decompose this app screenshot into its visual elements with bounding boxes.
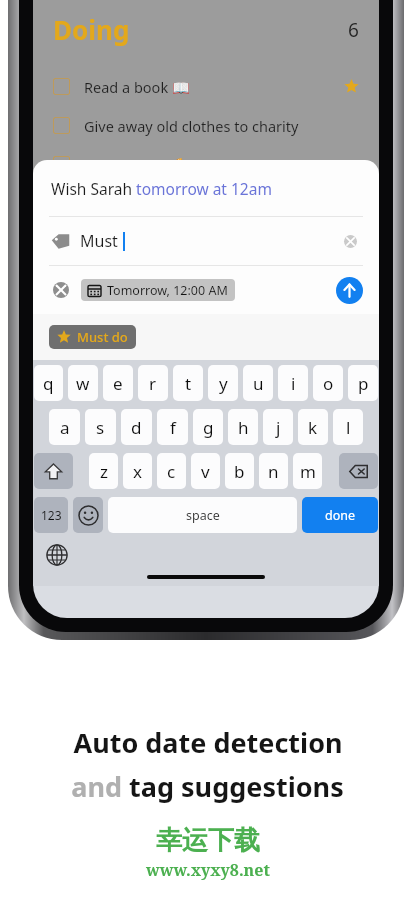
staticText: i [291,372,296,395]
button[interactable]: Shift [34,453,73,489]
staticText: u [253,372,264,395]
staticText: a [60,416,70,439]
button[interactable]: Tomorrow, 12:00 AM [81,279,235,301]
staticText: Give away old clothes to charity [84,116,299,136]
staticText: Bake bread 🥖 [84,155,183,175]
staticText: c [167,460,176,483]
staticText: Must [80,230,118,252]
button[interactable]: Bake bread 🥖 [33,145,379,184]
button[interactable]: y [208,365,238,401]
staticText: Auto date detection [73,724,343,761]
staticText: Tomorrow, 12:00 AM [107,282,228,299]
staticText: j [276,416,281,439]
button[interactable]: d [121,409,152,445]
button[interactable]: l [333,409,363,445]
button[interactable]: z [89,453,118,489]
staticText: z [100,460,108,483]
button[interactable]: Give away old clothes to charity [33,106,379,145]
button[interactable]: 123 [34,497,68,533]
staticText: n [268,460,279,483]
button[interactable]: s [85,409,116,445]
button[interactable]: Wish Sarah tomorrow at 12am [33,160,379,216]
staticText: e [113,372,123,395]
staticText: r [149,372,157,395]
staticText: m [300,460,316,483]
button[interactable]: f [157,409,188,445]
button[interactable]: m [293,453,322,489]
staticText: b [234,460,245,483]
button[interactable]: c [157,453,186,489]
staticText: Doing [53,12,130,47]
button[interactable]: Must do [49,325,136,349]
button[interactable]: done [302,497,378,533]
staticText: 123 [41,507,62,523]
staticText: q [43,372,54,395]
button[interactable]: Remove date [49,278,73,302]
staticText: l [346,416,351,439]
button[interactable]: n [259,453,288,489]
staticText: k [308,416,318,439]
button[interactable]: Emoji [73,497,103,533]
button[interactable]: p [348,365,378,401]
staticText: done [325,507,356,524]
staticText: g [203,416,214,439]
staticText: Organise childhood pictures [84,184,276,192]
button[interactable]: Read a book 📖 [33,67,379,106]
button[interactable]: w [68,365,98,401]
button[interactable]: Submit [336,277,363,304]
staticText: www.xyxy8.net [146,859,270,881]
button[interactable]: j [263,409,293,445]
button[interactable]: i [278,365,308,401]
staticText: t [185,372,192,395]
staticText: 幸运下载 [156,824,260,857]
button[interactable]: o [313,365,343,401]
staticText: d [131,416,142,439]
staticText: p [358,372,369,395]
staticText: and tag suggestions [71,768,344,805]
staticText: o [323,372,334,395]
staticText: v [201,460,210,483]
button[interactable]: k [298,409,328,445]
button[interactable]: t [173,365,203,401]
button[interactable]: Change keyboard language [46,544,68,566]
button[interactable]: b [225,453,254,489]
staticText: s [96,416,105,439]
staticText: w [76,372,90,395]
staticText: f [170,416,176,439]
button[interactable]: Organise childhood pictures [33,184,379,192]
button[interactable]: Backspace [339,453,378,489]
staticText: Must do [77,328,128,346]
button[interactable]: space [108,497,297,533]
button[interactable]: v [191,453,220,489]
button[interactable]: Must [33,217,379,265]
staticText: 6 [348,17,359,43]
button[interactable]: g [193,409,223,445]
staticText: Read a book 📖 [84,77,190,97]
staticText: space [186,507,220,524]
button[interactable]: x [123,453,152,489]
button[interactable]: r [138,365,168,401]
button[interactable]: h [228,409,258,445]
staticText: x [133,460,142,483]
button[interactable]: a [49,409,80,445]
button[interactable]: Clear text [339,230,361,252]
staticText: Wish Sarah tomorrow at 12am [51,178,272,199]
staticText: h [238,416,249,439]
button[interactable]: u [243,365,273,401]
staticText: y [219,372,228,395]
button[interactable]: q [34,365,63,401]
button[interactable]: e [103,365,133,401]
